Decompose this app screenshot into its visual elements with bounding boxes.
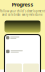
staticText: Follow your child's development	[0, 9, 45, 13]
staticText: and celebrate every milestone	[2, 13, 43, 16]
staticText: Progress	[11, 1, 33, 8]
